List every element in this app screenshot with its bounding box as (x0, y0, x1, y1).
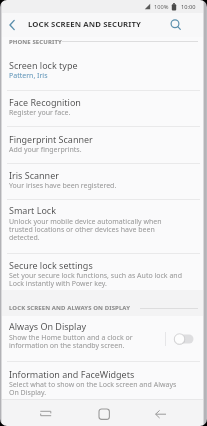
button[interactable] (0, 54, 207, 90)
staticText: Information and FaceWidgets (9, 368, 135, 380)
button[interactable] (0, 361, 207, 399)
staticText: Iris Scanner (9, 169, 59, 181)
staticText: information on the standby screen. (9, 341, 125, 351)
staticText: LOCK SCREEN AND SECURITY (28, 19, 142, 30)
staticText: 100% (154, 3, 169, 11)
button[interactable] (0, 316, 207, 361)
staticText: Select what to show on the Lock screen a… (9, 380, 177, 390)
staticText: Face Recognition (9, 96, 81, 108)
staticText: Set your secure lock functions, such as … (9, 271, 182, 281)
button[interactable] (149, 402, 173, 426)
button[interactable] (0, 126, 207, 163)
button[interactable] (0, 199, 207, 254)
button[interactable] (0, 253, 207, 290)
button[interactable] (167, 16, 185, 34)
button[interactable] (34, 402, 57, 425)
staticText: Add your fingerprints. (9, 145, 82, 155)
staticText: LOCK SCREEN AND ALWAYS ON DISPLAY (9, 304, 131, 312)
staticText: Unlock your mobile device automatically … (9, 217, 162, 227)
staticText: Always On Display (9, 320, 87, 332)
staticText: detected. (9, 233, 40, 243)
button[interactable] (4, 17, 20, 33)
staticText: 10:00 (181, 3, 196, 11)
button[interactable] (0, 163, 207, 199)
staticText: Lock instantly with Power key. (9, 279, 107, 289)
staticText: Smart Lock (9, 204, 56, 216)
staticText: Your irises have been registered. (9, 181, 117, 191)
staticText: On Display. (9, 388, 47, 398)
staticText: Screen lock type (9, 59, 78, 71)
staticText: Show the Home button and a clock or (9, 333, 133, 343)
staticText: Secure lock settings (9, 259, 93, 271)
staticText: trusted locations or other devices have … (9, 225, 155, 235)
button[interactable] (92, 402, 116, 426)
button[interactable] (170, 329, 198, 349)
staticText: PHONE SECURITY (9, 38, 62, 46)
staticText: Pattern, Iris (9, 71, 48, 81)
staticText: Fingerprint Scanner (9, 133, 93, 145)
staticText: Register your face. (9, 108, 71, 118)
button[interactable] (0, 90, 207, 126)
